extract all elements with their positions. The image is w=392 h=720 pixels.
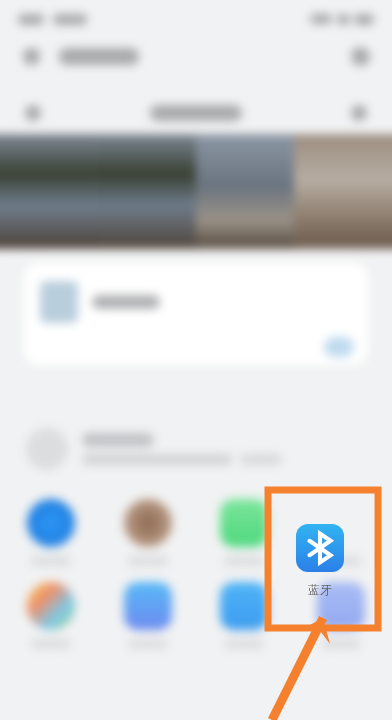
button[interactable] [26,407,366,491]
staticText: 蓝牙 [308,582,332,597]
button[interactable] [24,263,368,365]
button[interactable] [304,499,378,566]
button[interactable]: Back [20,45,42,67]
button[interactable] [111,499,185,566]
button[interactable] [207,582,281,649]
button[interactable]: 蓝牙 [284,524,356,597]
button[interactable] [207,499,281,566]
button[interactable] [304,582,378,649]
button[interactable] [14,582,88,649]
button[interactable] [14,499,88,566]
button[interactable] [111,582,185,649]
button[interactable]: More [348,102,370,124]
button[interactable]: Search [348,44,372,68]
button[interactable]: Menu [22,102,44,124]
